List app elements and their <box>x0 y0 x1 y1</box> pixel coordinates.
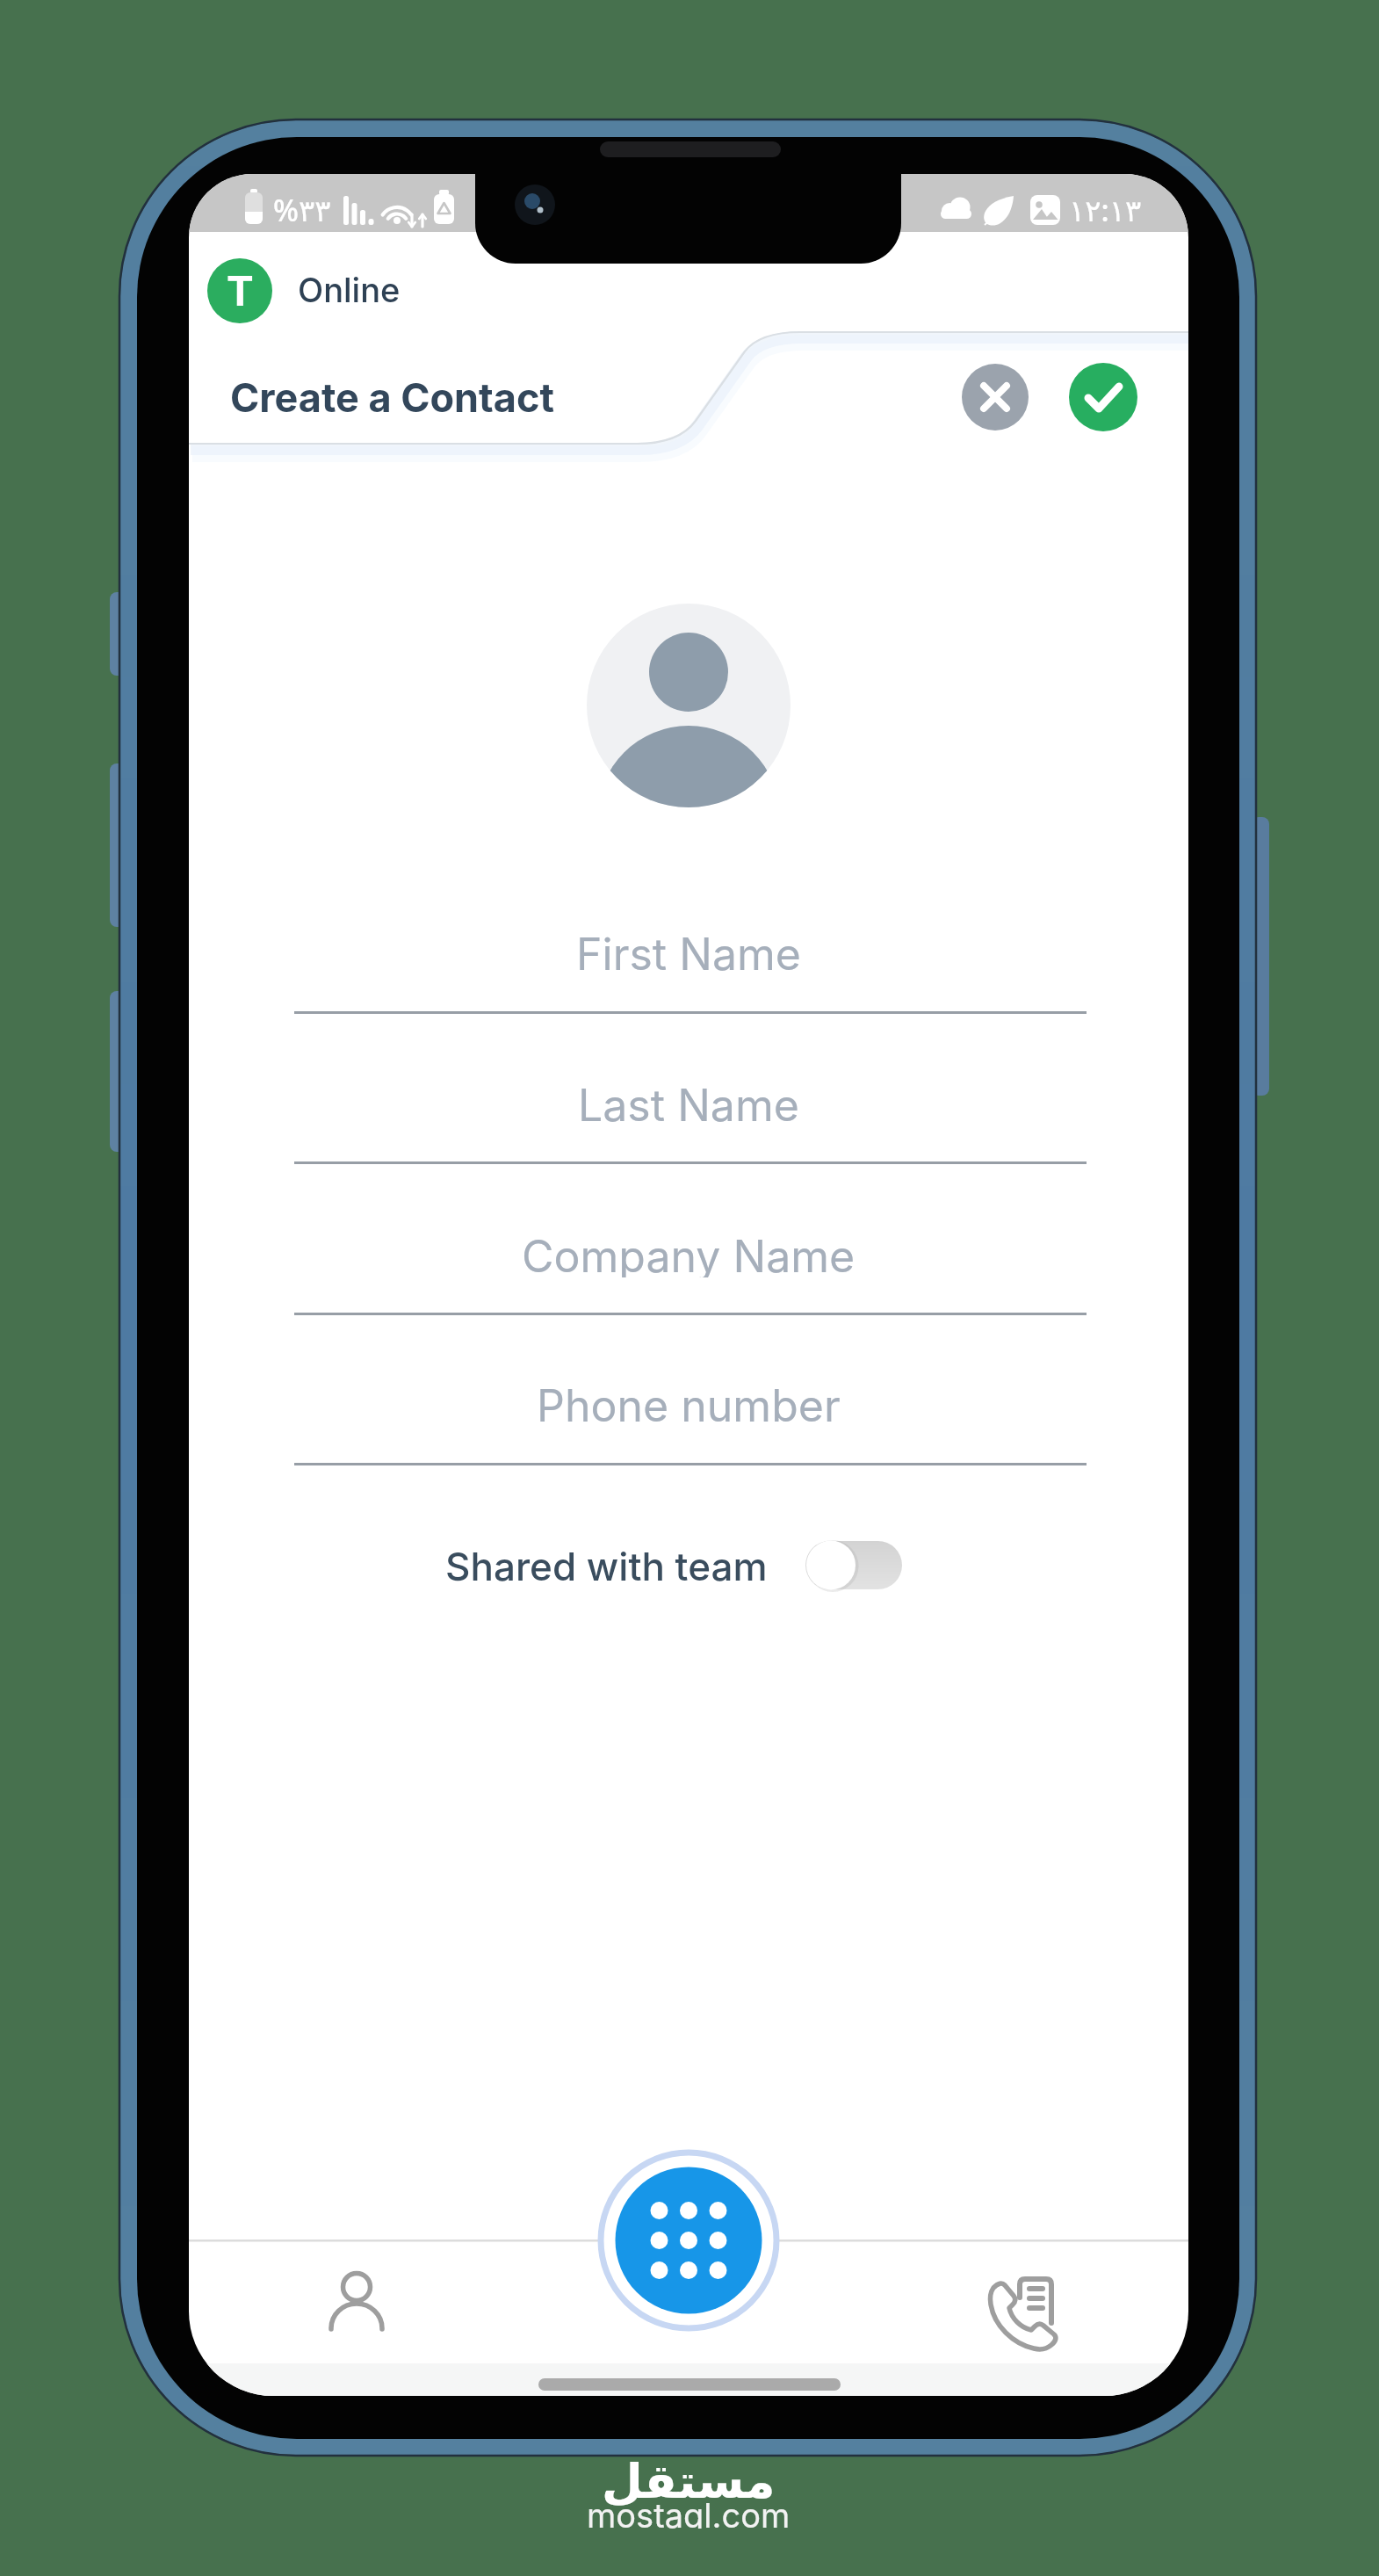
button[interactable] <box>587 604 791 807</box>
button[interactable]: Online <box>298 270 473 310</box>
staticText: %٣٣ <box>273 190 331 227</box>
button[interactable]: Company Name <box>189 1230 1188 1277</box>
staticText: ١٢:١٣ <box>1069 190 1142 227</box>
button[interactable] <box>976 2258 1064 2346</box>
staticText: Last Name <box>578 1079 799 1126</box>
staticText: First Name <box>576 928 801 975</box>
staticText: Create a Contact <box>230 373 554 421</box>
button[interactable]: First Name <box>189 928 1188 975</box>
button[interactable]: Shared with team <box>435 1543 777 1588</box>
button[interactable] <box>805 1541 902 1589</box>
staticText: Company Name <box>522 1230 856 1277</box>
button[interactable] <box>1069 363 1137 431</box>
button[interactable] <box>313 2258 401 2346</box>
staticText: مستقل <box>602 2454 776 2509</box>
button[interactable] <box>962 364 1029 431</box>
button[interactable]: Last Name <box>189 1079 1188 1126</box>
staticText: Online <box>298 270 401 310</box>
staticText: Shared with team <box>445 1543 768 1588</box>
staticText: Phone number <box>537 1379 841 1427</box>
staticText: T <box>227 266 254 315</box>
button[interactable] <box>597 2149 780 2332</box>
staticText: mostaql.com <box>587 2495 791 2529</box>
button[interactable]: Phone number <box>189 1379 1188 1427</box>
